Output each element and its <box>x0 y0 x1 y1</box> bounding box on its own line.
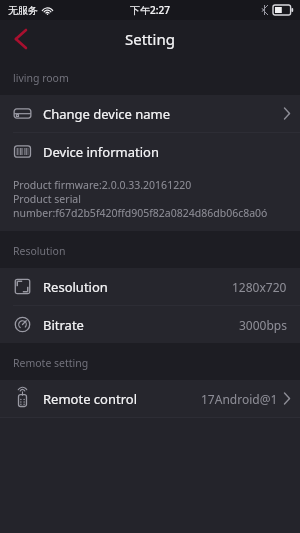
staticText: Product serial number:f67d2b5f420ffd905f… <box>13 192 268 220</box>
button[interactable]: Change device name <box>0 95 300 132</box>
staticText: 17Android@1 <box>201 391 278 407</box>
staticText: Remote setting <box>13 356 89 370</box>
staticText: Product firmware:2.0.0.33.20161220 <box>13 178 192 192</box>
staticText: Bitrate <box>43 316 84 334</box>
staticText: Change device name <box>43 105 171 123</box>
staticText: Setting <box>125 29 175 49</box>
button[interactable]: Device information <box>0 133 300 170</box>
staticText: Device information <box>43 143 159 161</box>
staticText: 无服务 <box>8 4 38 17</box>
button[interactable]: Bitrate <box>0 306 300 343</box>
button[interactable]: Back <box>0 20 40 58</box>
staticText: 下午2:27 <box>130 3 170 17</box>
staticText: 3000bps <box>239 317 287 333</box>
staticText: Resolution <box>13 244 66 258</box>
staticText: Remote control <box>43 390 138 408</box>
staticText: Resolution <box>43 278 108 296</box>
staticText: 1280x720 <box>232 279 287 295</box>
button[interactable]: Resolution <box>0 268 300 305</box>
staticText: living room <box>13 71 69 85</box>
button[interactable]: Remote control <box>0 380 300 417</box>
